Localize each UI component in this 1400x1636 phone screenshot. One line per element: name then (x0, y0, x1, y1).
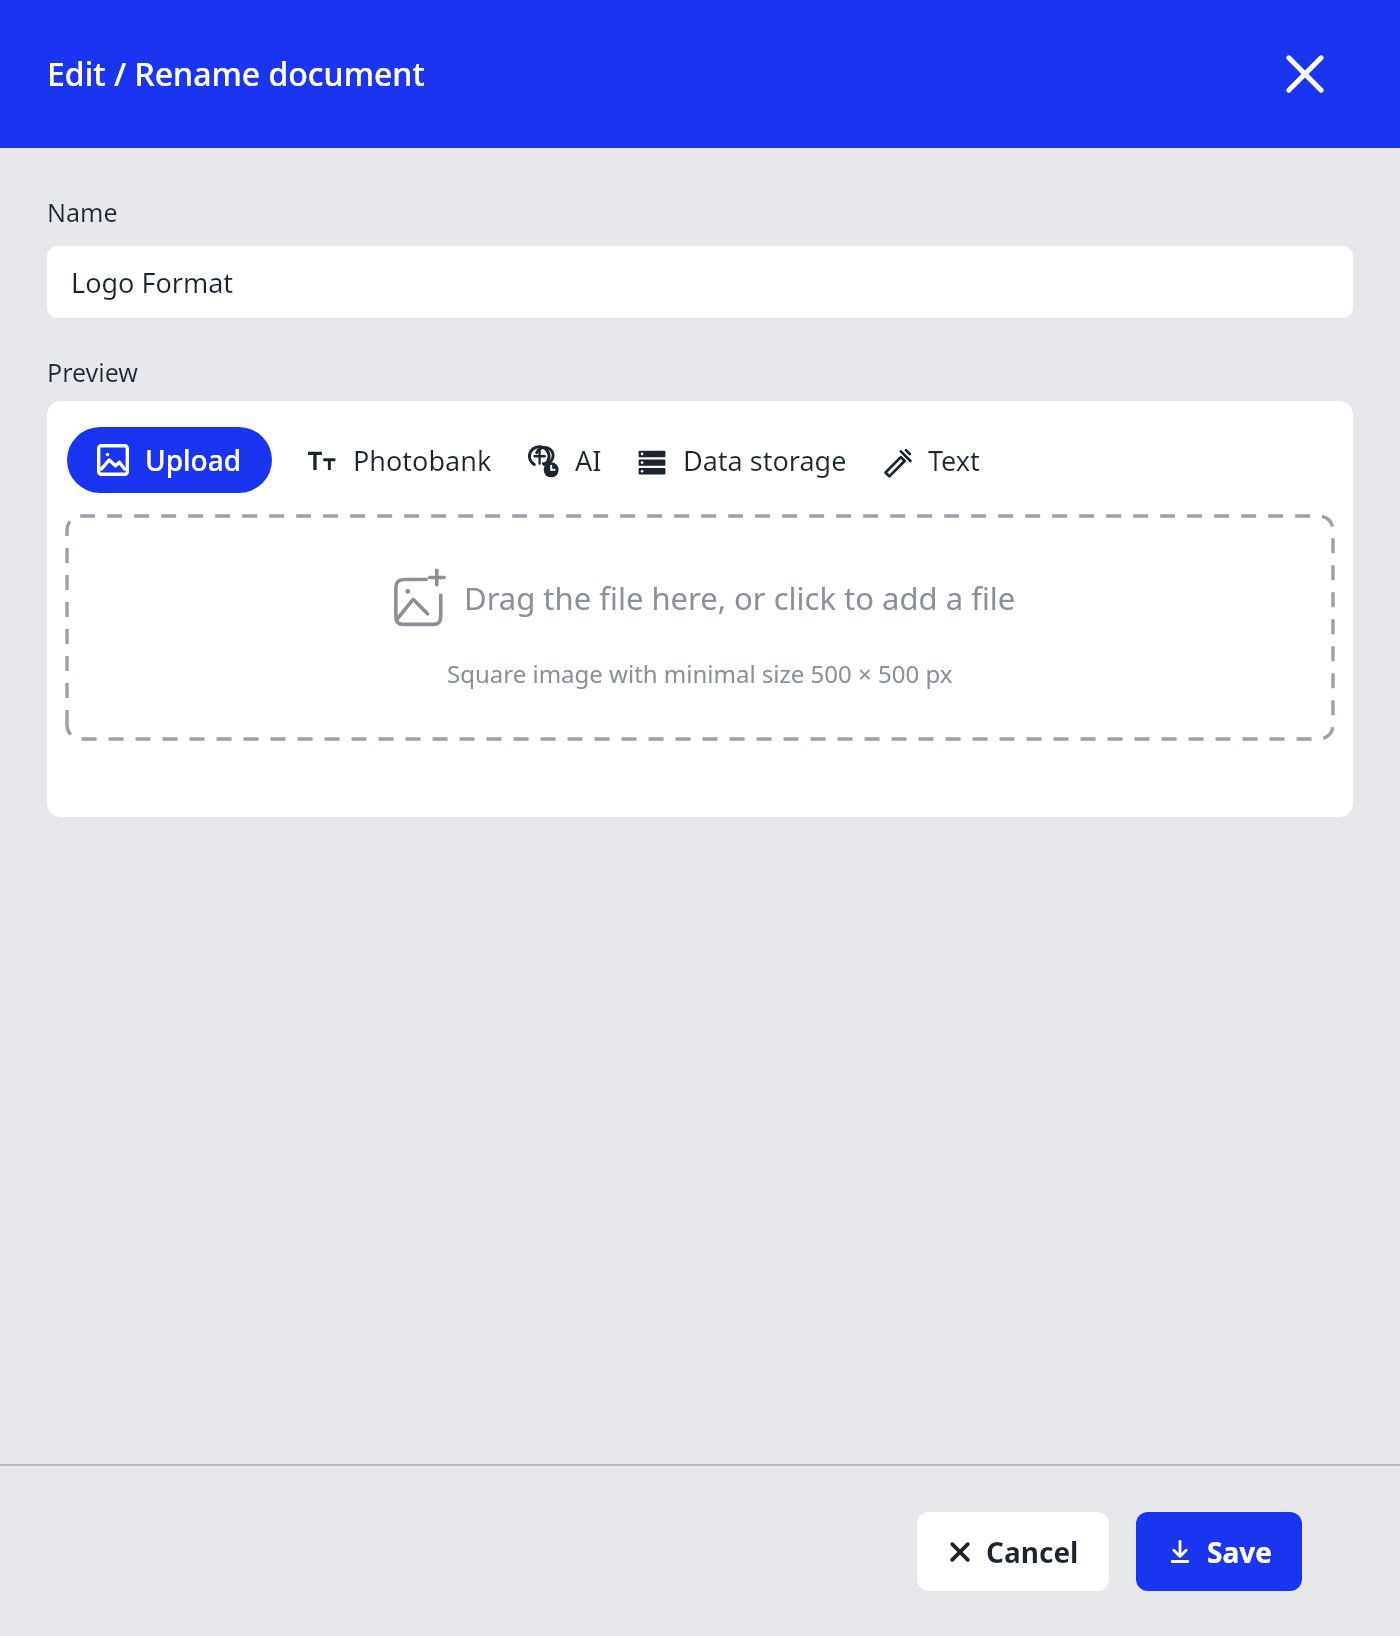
staticText: Text (928, 442, 980, 479)
staticText: Data storage (683, 442, 847, 479)
staticText: Save (1207, 1533, 1272, 1571)
button[interactable]: Logo Format (47, 246, 1353, 318)
button[interactable]: Drag the file here, or click to add a fi… (67, 516, 1333, 739)
staticText: Edit / Rename document (47, 52, 425, 96)
staticText: Photobank (353, 442, 492, 479)
button[interactable]: Data storage (636, 432, 847, 489)
staticText: Cancel (986, 1533, 1079, 1571)
button[interactable]: Save (1136, 1512, 1302, 1591)
staticText: AI (575, 442, 602, 479)
button[interactable]: AI (526, 432, 602, 489)
staticText: Logo Format (71, 264, 234, 301)
button[interactable]: Upload (67, 427, 272, 493)
button[interactable]: Text (881, 432, 980, 489)
staticText: Name (47, 195, 118, 229)
button[interactable]: Photobank (306, 432, 492, 489)
staticText: Square image with minimal size 500 × 500… (447, 657, 953, 690)
button[interactable]: Cancel (917, 1512, 1109, 1591)
button[interactable]: Close (1278, 47, 1332, 101)
staticText: Preview (47, 355, 138, 389)
staticText: Upload (145, 441, 242, 479)
staticText: Drag the file here, or click to add a fi… (464, 577, 1016, 619)
